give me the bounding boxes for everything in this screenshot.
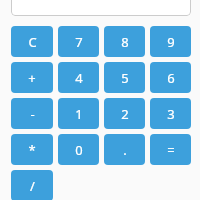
button[interactable]: + xyxy=(11,62,53,93)
button[interactable]: 5 xyxy=(104,62,145,93)
staticText: / xyxy=(30,177,35,195)
staticText: * xyxy=(28,141,36,159)
staticText: + xyxy=(28,69,36,87)
staticText: - xyxy=(30,105,35,123)
staticText: 1 xyxy=(75,105,83,123)
staticText: . xyxy=(123,141,127,159)
staticText: = xyxy=(167,141,175,159)
button[interactable]: = xyxy=(150,134,191,165)
button[interactable]: . xyxy=(104,134,145,165)
staticText: 7 xyxy=(75,33,83,51)
button[interactable] xyxy=(11,0,191,16)
button[interactable]: 7 xyxy=(58,26,99,57)
button[interactable]: 8 xyxy=(104,26,145,57)
button[interactable]: 0 xyxy=(58,134,99,165)
button[interactable]: 6 xyxy=(150,62,191,93)
button[interactable]: - xyxy=(11,98,53,129)
button[interactable]: C xyxy=(11,26,53,57)
button[interactable]: 1 xyxy=(58,98,99,129)
button[interactable]: 3 xyxy=(150,98,191,129)
button[interactable]: / xyxy=(11,170,53,200)
staticText: 8 xyxy=(121,33,129,51)
staticText: 9 xyxy=(167,33,175,51)
staticText: 0 xyxy=(75,141,83,159)
staticText: 2 xyxy=(121,105,129,123)
staticText: 5 xyxy=(121,69,129,87)
staticText: 4 xyxy=(75,69,83,87)
staticText: 3 xyxy=(167,105,175,123)
button[interactable]: 9 xyxy=(150,26,191,57)
button[interactable]: 4 xyxy=(58,62,99,93)
staticText: 6 xyxy=(167,69,175,87)
button[interactable]: * xyxy=(11,134,53,165)
staticText: C xyxy=(28,33,37,51)
button[interactable]: 2 xyxy=(104,98,145,129)
